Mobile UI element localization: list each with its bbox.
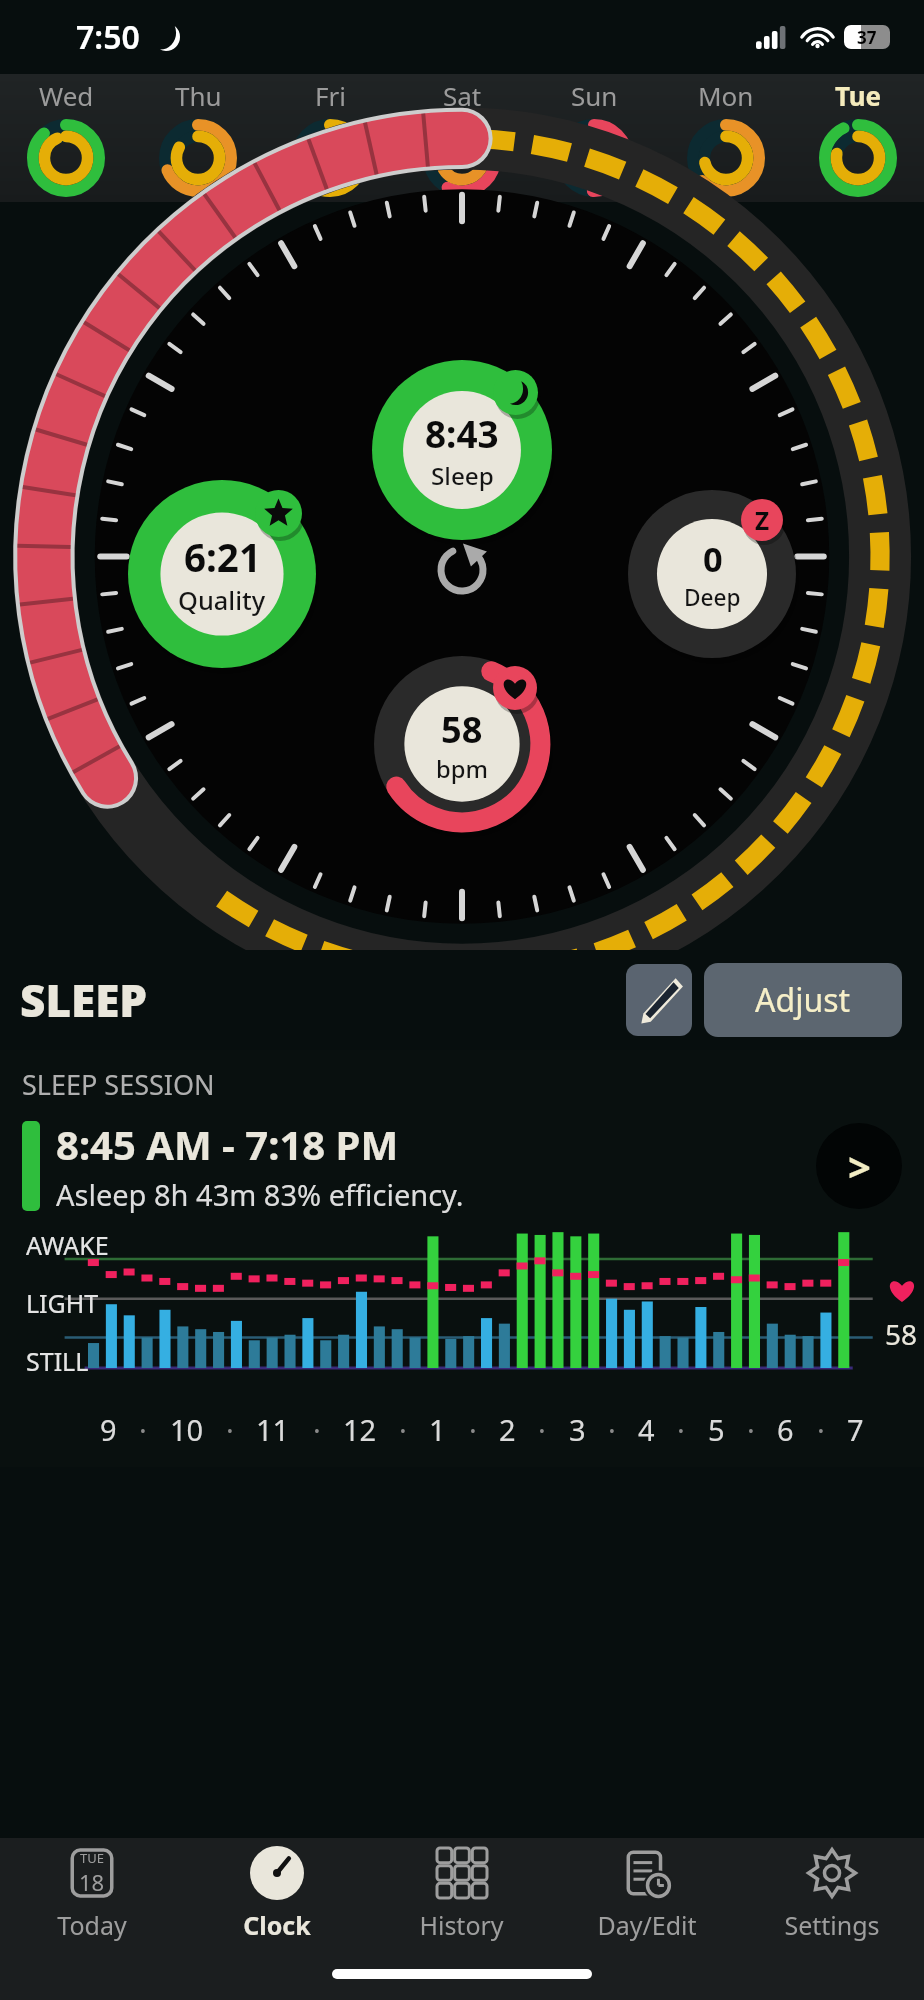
staticText: Wed xyxy=(39,78,94,113)
staticText: SLEEP xyxy=(20,970,148,1030)
staticText: 8:45 AM - 7:18 PM xyxy=(56,1117,399,1171)
staticText: · xyxy=(469,1410,477,1449)
staticText: 58 xyxy=(885,1315,918,1353)
button[interactable]: Tue xyxy=(792,74,924,202)
staticText: Adjust xyxy=(755,978,851,1022)
staticText: · xyxy=(747,1410,755,1449)
staticText: Thu xyxy=(175,78,222,113)
button[interactable]: Fri xyxy=(264,74,396,202)
button[interactable]: Wed xyxy=(0,74,132,202)
staticText: · xyxy=(608,1410,616,1449)
staticText: History xyxy=(419,1908,504,1942)
staticText: 0 xyxy=(703,535,723,582)
staticText: Settings xyxy=(784,1908,880,1942)
button[interactable]: Thu xyxy=(132,74,264,202)
staticText: Clock xyxy=(243,1908,311,1942)
button[interactable]: Details xyxy=(816,1123,902,1209)
staticText: TUE xyxy=(80,1849,104,1867)
staticText: · xyxy=(139,1410,147,1449)
staticText: STILL xyxy=(26,1344,89,1378)
staticText: 11 xyxy=(256,1410,290,1449)
staticText: bpm xyxy=(436,753,488,785)
staticText: Tue xyxy=(835,78,882,113)
button[interactable]: Sat xyxy=(396,74,528,202)
button[interactable]: 8:45 AM - 7:18 PM xyxy=(0,1117,924,1214)
staticText: · xyxy=(226,1410,234,1449)
staticText: · xyxy=(313,1410,321,1449)
button[interactable]: Edit xyxy=(626,964,692,1036)
button[interactable]: 8:43 xyxy=(372,360,552,540)
staticText: 9 xyxy=(100,1410,117,1449)
button[interactable]: Adjust xyxy=(704,963,902,1037)
staticText: 7:50 xyxy=(76,15,140,59)
staticText: Z xyxy=(755,504,770,537)
staticText: 2 xyxy=(499,1410,516,1449)
staticText: 58 xyxy=(441,704,483,753)
staticText: Mon xyxy=(698,78,754,113)
staticText: 37 xyxy=(857,26,877,49)
staticText: 10 xyxy=(170,1410,204,1449)
button[interactable]: 6:21 xyxy=(128,480,316,668)
staticText: 12 xyxy=(343,1410,377,1449)
staticText: Day/Edit xyxy=(597,1908,697,1942)
staticText: Sun xyxy=(571,78,618,113)
button[interactable]: Refresh xyxy=(429,537,495,603)
button[interactable]: 0 xyxy=(628,490,796,658)
staticText: · xyxy=(538,1410,546,1449)
staticText: 3 xyxy=(569,1410,586,1449)
staticText: Quality xyxy=(178,583,266,618)
staticText: 4 xyxy=(638,1410,655,1449)
staticText: 6:21 xyxy=(184,531,261,583)
button[interactable]: TUE xyxy=(0,1838,184,1948)
staticText: · xyxy=(677,1410,685,1449)
button[interactable]: History xyxy=(369,1838,554,1948)
button[interactable]: Settings xyxy=(739,1838,924,1948)
button[interactable]: Clock xyxy=(184,1838,369,1948)
staticText: Today xyxy=(57,1908,127,1942)
staticText: Sat xyxy=(443,78,482,113)
staticText: SLEEP SESSION xyxy=(22,1066,215,1103)
staticText: 6 xyxy=(777,1410,794,1449)
staticText: Sleep xyxy=(431,459,494,492)
staticText: 1 xyxy=(429,1410,446,1449)
staticText: · xyxy=(399,1410,407,1449)
staticText: · xyxy=(817,1410,825,1449)
button[interactable]: Day/Edit xyxy=(554,1838,739,1948)
staticText: 5 xyxy=(708,1410,725,1449)
staticText: > xyxy=(848,1139,871,1193)
button[interactable]: 58 xyxy=(374,656,550,832)
button[interactable]: Mon xyxy=(660,74,792,202)
staticText: 7 xyxy=(847,1410,864,1449)
staticText: Fri xyxy=(315,78,346,113)
staticText: LIGHT xyxy=(26,1286,99,1320)
staticText: Asleep 8h 43m 83% efficiency. xyxy=(56,1175,464,1214)
button[interactable]: Sun xyxy=(528,74,660,202)
staticText: Deep xyxy=(684,582,741,613)
staticText: AWAKE xyxy=(26,1228,109,1262)
staticText: 8:43 xyxy=(425,409,499,459)
staticText: 18 xyxy=(79,1867,105,1897)
